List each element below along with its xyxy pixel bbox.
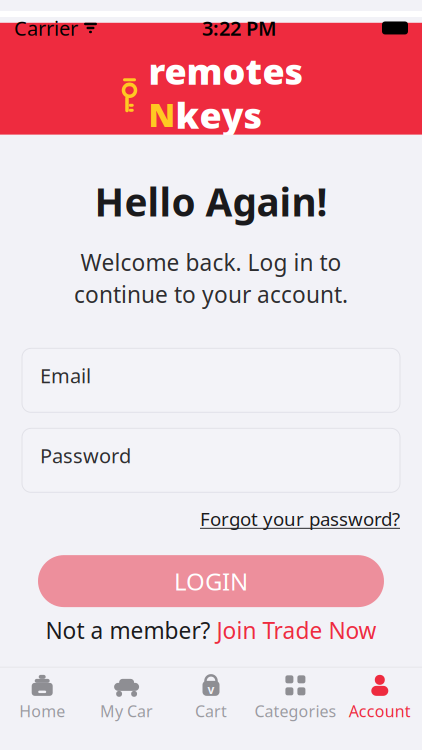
button[interactable]: Account (338, 667, 422, 721)
staticText: Forgot your password? (200, 506, 400, 531)
staticText: v (207, 681, 214, 697)
staticText: keys (175, 91, 262, 139)
button[interactable]: Forgot your password? (200, 492, 400, 533)
button[interactable]: Home (0, 667, 84, 721)
staticText: Welcome back. Log in to (80, 247, 341, 277)
staticText: remotes (148, 47, 303, 95)
button[interactable]: My Car (84, 667, 169, 721)
staticText: continue to your account. (74, 279, 348, 309)
button[interactable]: LOGIN (38, 555, 384, 607)
staticText: Not a member? (45, 615, 216, 645)
button[interactable]: Categories (253, 667, 338, 721)
staticText: Email (40, 362, 91, 389)
staticText: N (148, 93, 175, 136)
staticText: LOGIN (174, 565, 248, 597)
staticText: Categories (254, 700, 336, 721)
staticText: Join Trade Now (216, 615, 376, 645)
staticText: Password (40, 442, 131, 469)
button[interactable]: Join Trade Now (216, 615, 376, 645)
staticText: Carrier (14, 15, 78, 41)
staticText: Home (19, 700, 65, 721)
staticText: Account (349, 700, 411, 721)
staticText: 3:22 PM (202, 15, 277, 41)
staticText: My Car (100, 700, 153, 721)
staticText: Cart (195, 700, 227, 721)
staticText: Hello Again! (94, 176, 327, 227)
button[interactable]: v (169, 667, 253, 721)
